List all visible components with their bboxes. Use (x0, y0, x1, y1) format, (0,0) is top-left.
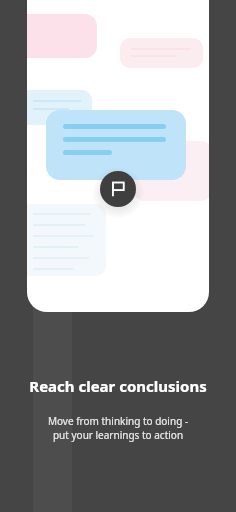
staticText: Move from thinking to doing - put your l… (14, 414, 222, 442)
button[interactable]: Reach clear conclusions (14, 376, 222, 396)
button[interactable]: Flag conclusion (100, 171, 136, 207)
button[interactable] (46, 110, 186, 180)
staticText: Reach clear conclusions (14, 376, 222, 396)
